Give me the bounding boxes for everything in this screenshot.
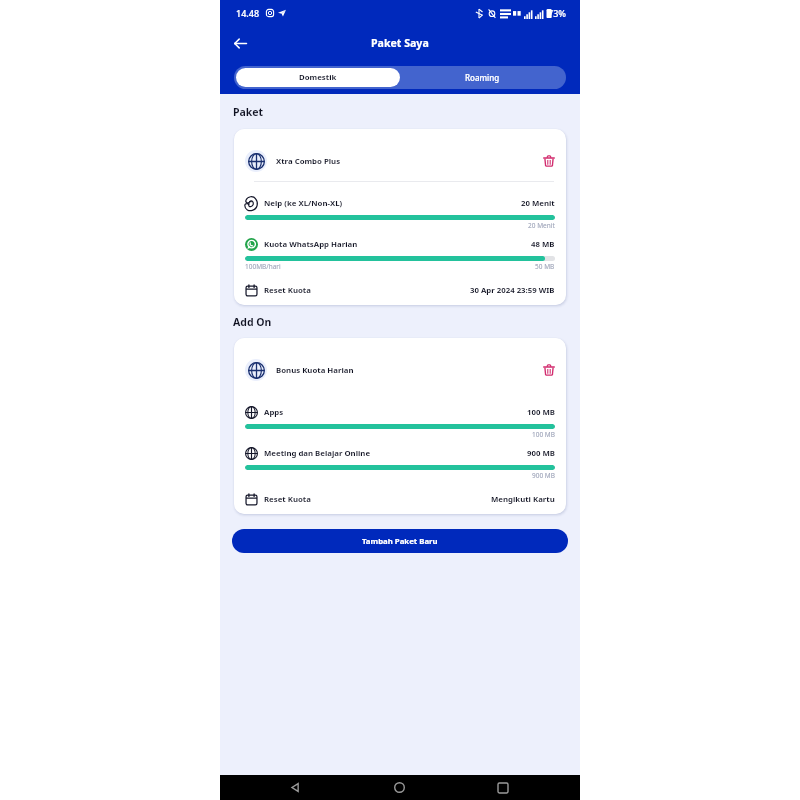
staticText: 20 Menit [521,198,555,209]
staticText: 900 MB [527,448,555,459]
staticText: 100MB/hari [245,262,281,271]
staticText: Mengikuti Kartu [491,494,555,505]
button[interactable]: Delete package [531,149,555,173]
staticText: 20 Menit [528,221,555,230]
button[interactable]: Back [226,29,254,57]
button[interactable]: Delete package [531,358,555,382]
staticText: Kuota WhatsApp Harian [264,239,358,250]
staticText: Paket Saya [371,36,429,50]
staticText: Tambah Paket Baru [362,536,438,547]
button[interactable]: Recent apps [488,775,518,800]
staticText: Add On [233,315,272,329]
staticText: Nelp (ke XL/Non-XL) [264,198,343,209]
button[interactable]: Back [280,775,310,800]
staticText: Meeting dan Belajar Online [264,448,371,459]
staticText: 100 MB [532,430,555,439]
button[interactable]: Tambah Paket Baru [232,529,568,553]
staticText: 48 MB [531,239,555,250]
staticText: 100 MB [527,407,555,418]
staticText: Apps [264,407,284,418]
staticText: Xtra Combo Plus [276,156,341,167]
staticText: 30 Apr 2024 23:59 WIB [470,285,555,296]
button[interactable]: Domestik [236,68,400,87]
staticText: Paket [233,105,264,119]
staticText: 14.48 [236,7,260,19]
button[interactable]: Roaming [400,68,564,87]
staticText: 50 MB [535,262,555,271]
staticText: 900 MB [532,471,555,480]
staticText: Domestik [299,72,337,83]
staticText: Roaming [465,72,500,83]
staticText: Reset Kuota [264,494,311,505]
staticText: Reset Kuota [264,285,311,296]
button[interactable]: Home [384,775,414,800]
staticText: 73% [548,7,566,19]
staticText: Bonus Kuota Harian [276,365,354,376]
